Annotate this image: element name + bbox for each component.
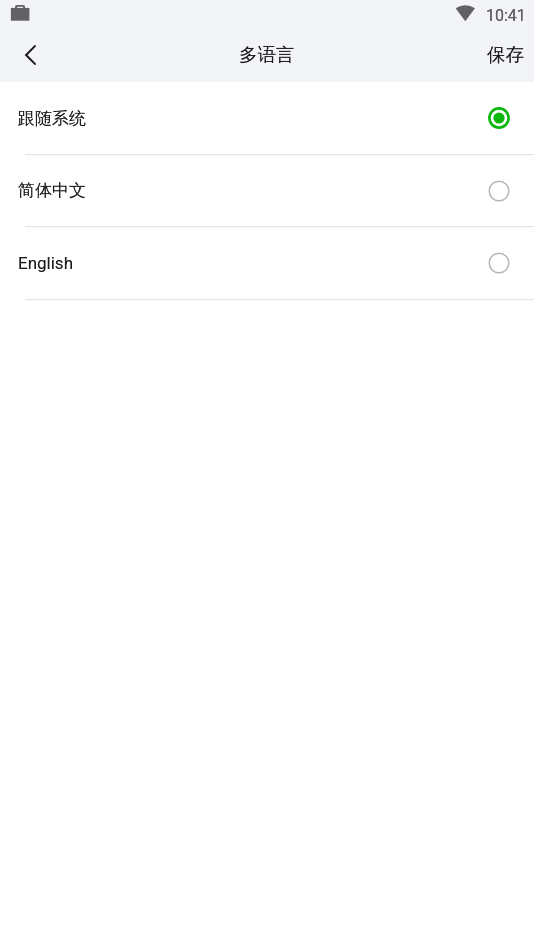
button[interactable]: Select English bbox=[488, 252, 510, 274]
button[interactable]: Select 跟随系统 bbox=[488, 107, 510, 129]
staticText: 10:41 bbox=[486, 6, 526, 25]
staticText: English bbox=[18, 253, 74, 273]
button[interactable]: 跟随系统 bbox=[0, 82, 534, 155]
staticText: 跟随系统 bbox=[18, 108, 86, 129]
button[interactable]: 简体中文 bbox=[0, 155, 534, 227]
staticText: 保存 bbox=[487, 43, 524, 66]
button[interactable]: English bbox=[0, 227, 534, 300]
staticText: 简体中文 bbox=[18, 180, 86, 201]
staticText: 跟随系统 bbox=[18, 108, 86, 129]
staticText: 多语言 bbox=[239, 43, 295, 66]
staticText: 10:41 bbox=[486, 6, 526, 25]
staticText: English bbox=[18, 253, 74, 273]
button[interactable]: Select 简体中文 bbox=[488, 180, 510, 202]
staticText: 简体中文 bbox=[18, 180, 86, 201]
button[interactable]: Back bbox=[0, 30, 58, 82]
button[interactable]: 保存 bbox=[473, 30, 534, 82]
staticText: 多语言 bbox=[239, 43, 295, 66]
staticText: 保存 bbox=[487, 43, 524, 66]
